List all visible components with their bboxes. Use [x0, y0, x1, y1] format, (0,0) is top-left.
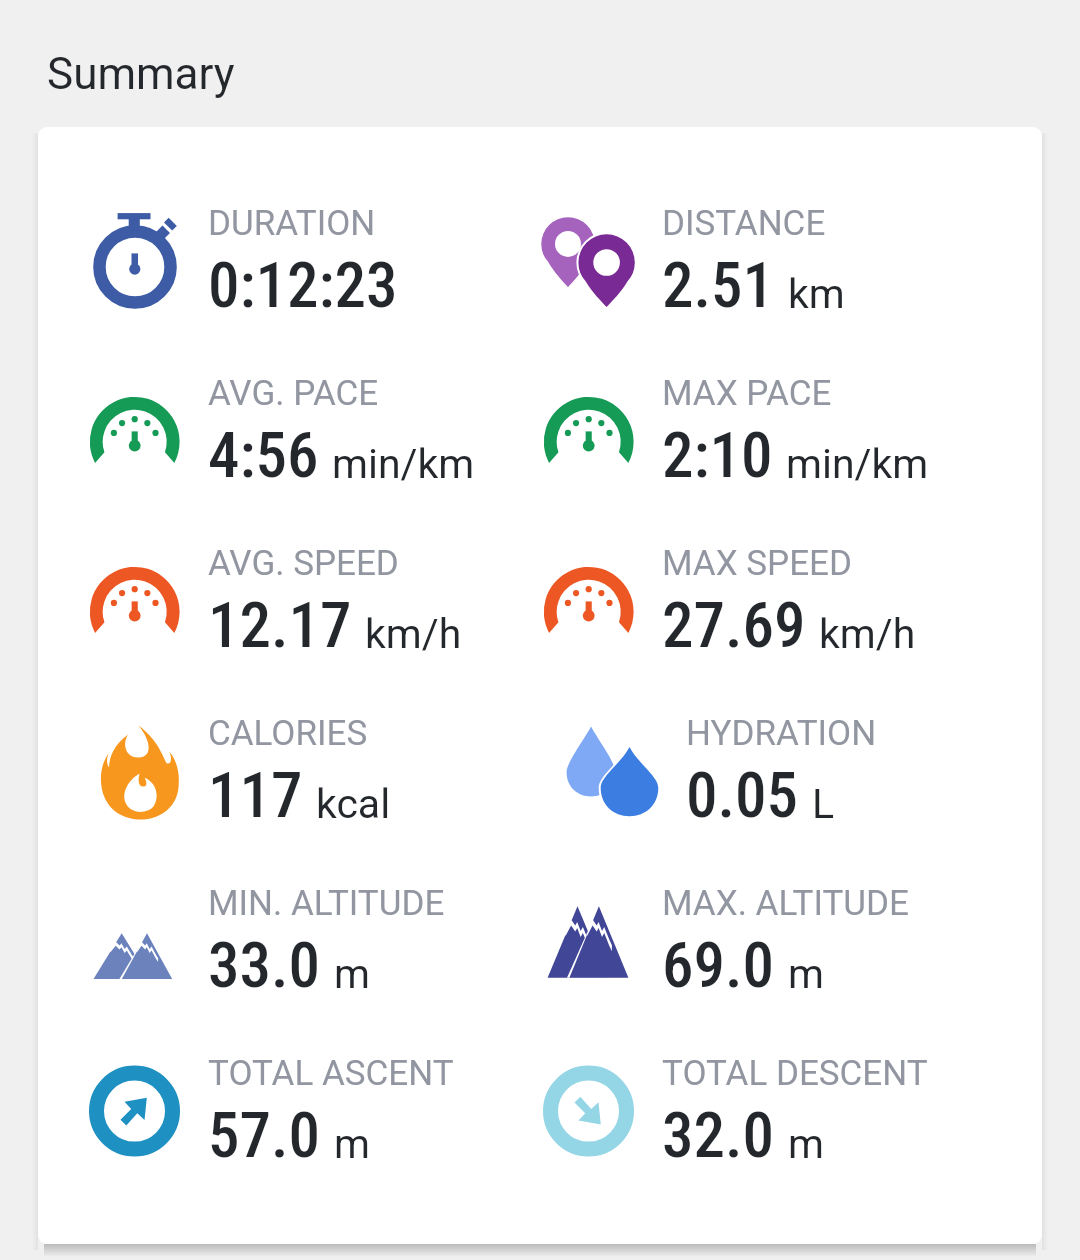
staticText: 69.0 [662, 929, 775, 1003]
staticText: DISTANCE [662, 203, 826, 244]
staticText: 27.69 [662, 589, 806, 663]
button[interactable]: CALORIES [92, 713, 532, 831]
staticText: AVG. PACE [208, 373, 379, 414]
staticText: TOTAL ASCENT [208, 1053, 454, 1094]
staticText: HYDRATION [686, 713, 877, 754]
button[interactable]: DISTANCE [546, 203, 986, 321]
button[interactable]: MAX PACE [546, 373, 986, 491]
staticText: MAX PACE [662, 373, 832, 414]
staticText: 117 [208, 759, 303, 833]
staticText: 0.05 [686, 759, 799, 833]
staticText: MAX SPEED [662, 543, 852, 584]
button[interactable]: MAX. ALTITUDE [546, 883, 986, 1001]
button[interactable]: DURATION [92, 203, 532, 321]
button[interactable]: TOTAL ASCENT [92, 1053, 532, 1171]
staticText: 12.17 [208, 589, 352, 663]
staticText: 2.51 [662, 249, 775, 323]
button[interactable]: HYDRATION [546, 713, 986, 831]
button[interactable]: MAX SPEED [546, 543, 986, 661]
staticText: 57.0 [208, 1099, 321, 1173]
staticText: km/h [819, 610, 916, 658]
staticText: 2:10 [662, 419, 773, 493]
staticText: CALORIES [208, 713, 368, 754]
staticText: L [812, 780, 835, 828]
staticText: kcal [316, 780, 391, 828]
staticText: AVG. SPEED [208, 543, 399, 584]
staticText: m [334, 950, 370, 998]
staticText: 32.0 [662, 1099, 775, 1173]
staticText: min/km [332, 440, 475, 488]
staticText: 0:12:23 [208, 249, 398, 323]
staticText: m [334, 1120, 370, 1168]
staticText: m [788, 950, 824, 998]
button[interactable]: TOTAL DESCENT [546, 1053, 986, 1171]
staticText: Summary [47, 48, 235, 100]
staticText: DURATION [208, 203, 376, 244]
staticText: 33.0 [208, 929, 321, 1003]
staticText: MAX. ALTITUDE [662, 883, 909, 924]
button[interactable]: AVG. SPEED [92, 543, 532, 661]
staticText: km/h [365, 610, 462, 658]
staticText: 4:56 [208, 419, 319, 493]
staticText: TOTAL DESCENT [662, 1053, 928, 1094]
button[interactable]: AVG. PACE [92, 373, 532, 491]
button[interactable]: MIN. ALTITUDE [92, 883, 532, 1001]
staticText: m [788, 1120, 824, 1168]
staticText: MIN. ALTITUDE [208, 883, 445, 924]
staticText: min/km [786, 440, 929, 488]
staticText: km [788, 270, 845, 318]
